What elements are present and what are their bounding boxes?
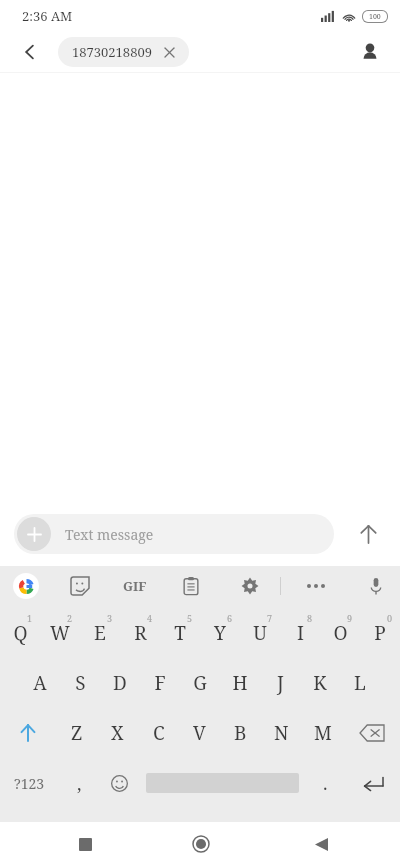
button[interactable]: Space [139, 758, 305, 808]
staticText: V [193, 720, 206, 746]
staticText: X [111, 720, 124, 746]
button[interactable]: ?123 [0, 758, 59, 808]
button[interactable]: A [20, 658, 60, 708]
button[interactable]: F [140, 658, 180, 708]
staticText: 8 [307, 612, 313, 624]
staticText: U [253, 620, 267, 646]
button[interactable]: Send [348, 514, 388, 554]
staticText: A [33, 670, 47, 696]
staticText: O [333, 620, 348, 646]
staticText: 5 [187, 612, 193, 624]
staticText: N [274, 720, 289, 746]
button[interactable]: N [261, 708, 302, 758]
staticText: I [297, 620, 304, 646]
staticText: B [234, 720, 247, 746]
button[interactable]: Add attachment [14, 514, 334, 554]
button[interactable]: 18730218809 [58, 37, 189, 67]
staticText: J [277, 670, 284, 696]
staticText: 2 [67, 612, 73, 624]
button[interactable]: Q [0, 608, 40, 658]
staticText: 100 [369, 12, 381, 22]
button[interactable]: D [100, 658, 140, 708]
staticText: 9 [347, 612, 353, 624]
button[interactable]: Settings [220, 566, 280, 606]
button[interactable]: I [280, 608, 320, 658]
staticText: 7 [267, 612, 273, 624]
staticText: 0 [387, 612, 393, 624]
staticText: H [232, 670, 248, 696]
button[interactable]: X [97, 708, 138, 758]
button[interactable]: Add attachment [17, 517, 51, 551]
staticText: 2:36 AM [22, 7, 73, 25]
staticText: E [94, 620, 106, 646]
button[interactable]: Y [200, 608, 240, 658]
staticText: K [313, 670, 327, 696]
button[interactable]: B [220, 708, 261, 758]
button[interactable]: Enter [345, 758, 400, 808]
button[interactable]: GIF [108, 566, 162, 606]
staticText: 1 [27, 612, 33, 624]
button[interactable]: Back [12, 34, 48, 70]
staticText: G [193, 670, 207, 696]
button[interactable]: Shift [0, 708, 56, 758]
button[interactable]: G [180, 658, 220, 708]
button[interactable]: Stickers [52, 566, 108, 606]
staticText: T [174, 620, 186, 646]
button[interactable]: M [302, 708, 343, 758]
staticText: . [323, 771, 328, 796]
button[interactable]: T [160, 608, 200, 658]
button[interactable]: More options [281, 566, 351, 606]
staticText: P [374, 620, 386, 646]
staticText: 3 [107, 612, 113, 624]
staticText: Y [214, 620, 226, 646]
button[interactable]: Home [134, 822, 267, 866]
staticText: F [154, 670, 166, 696]
staticText: R [134, 620, 147, 646]
button[interactable]: , [59, 758, 99, 808]
button[interactable]: Recents [0, 822, 134, 866]
button[interactable]: Google search [0, 566, 52, 606]
button[interactable]: H [220, 658, 260, 708]
staticText: C [153, 720, 165, 746]
button[interactable]: W [40, 608, 80, 658]
staticText: GIF [123, 577, 147, 595]
button[interactable]: R [120, 608, 160, 658]
staticText: 6 [227, 612, 233, 624]
staticText: Z [71, 720, 83, 746]
button[interactable]: E [80, 608, 120, 658]
button[interactable]: Back [267, 822, 400, 866]
button[interactable]: J [260, 658, 300, 708]
button[interactable]: K [300, 658, 340, 708]
staticText: S [75, 670, 86, 696]
staticText: D [113, 670, 127, 696]
button[interactable]: Voice input [351, 566, 400, 606]
button[interactable]: Contact details [352, 34, 388, 70]
staticText: M [314, 720, 332, 746]
staticText: , [77, 771, 82, 796]
button[interactable]: S [60, 658, 100, 708]
button[interactable]: P [360, 608, 400, 658]
staticText: L [354, 670, 366, 696]
button[interactable]: . [305, 758, 345, 808]
button[interactable]: Emoji [99, 758, 139, 808]
button[interactable]: C [138, 708, 179, 758]
button[interactable]: O [320, 608, 360, 658]
staticText: W [50, 620, 70, 646]
staticText: Q [13, 620, 28, 646]
button[interactable]: U [240, 608, 280, 658]
staticText: 18730218809 [72, 43, 152, 61]
button[interactable]: Clipboard [162, 566, 220, 606]
button[interactable]: L [340, 658, 380, 708]
staticText: ?123 [14, 774, 45, 793]
button[interactable]: Backspace [343, 708, 400, 758]
staticText: 4 [147, 612, 153, 624]
staticText: Text message [65, 525, 154, 544]
button[interactable]: Z [56, 708, 97, 758]
button[interactable]: V [179, 708, 220, 758]
